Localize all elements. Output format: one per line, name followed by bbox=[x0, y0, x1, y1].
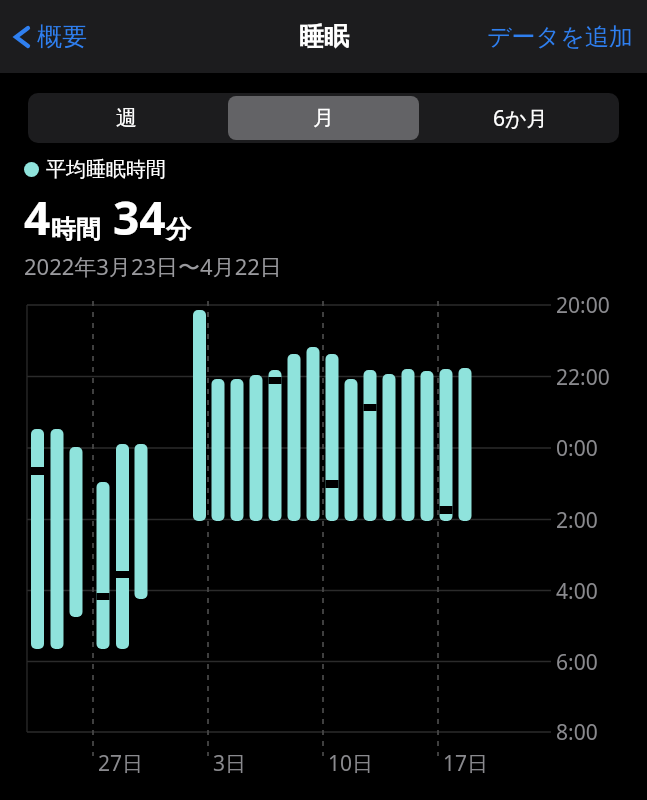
staticText: 月 bbox=[313, 105, 334, 131]
staticText: 8:00 bbox=[556, 718, 598, 747]
button[interactable]: データを追加 bbox=[473, 12, 647, 62]
staticText: 4 bbox=[24, 186, 51, 249]
staticText: 2022年3月23日〜4月22日 bbox=[24, 251, 282, 281]
staticText: データを追加 bbox=[487, 22, 633, 52]
staticText: 17日 bbox=[443, 749, 489, 778]
staticText: 時間 bbox=[51, 214, 101, 245]
staticText: 34 bbox=[113, 186, 166, 249]
staticText: 分 bbox=[166, 214, 191, 245]
staticText: 20:00 bbox=[556, 291, 610, 320]
staticText: 3日 bbox=[213, 749, 247, 778]
staticText: 6か月 bbox=[493, 104, 548, 133]
button[interactable]: 概要 bbox=[0, 13, 101, 60]
button[interactable]: 月 bbox=[228, 96, 419, 140]
button[interactable]: 週 bbox=[31, 96, 222, 140]
staticText: 27日 bbox=[98, 749, 144, 778]
staticText: 22:00 bbox=[556, 363, 610, 392]
staticText: 2:00 bbox=[556, 506, 598, 535]
staticText: 4:00 bbox=[556, 577, 598, 606]
staticText: 0:00 bbox=[556, 434, 598, 463]
staticText: 6:00 bbox=[556, 648, 598, 677]
staticText: 平均睡眠時間 bbox=[46, 157, 166, 182]
staticText: 10日 bbox=[328, 749, 374, 778]
staticText: 睡眠 bbox=[299, 21, 349, 52]
staticText: 概要 bbox=[37, 21, 87, 52]
staticText: 週 bbox=[116, 105, 137, 131]
button[interactable]: 6か月 bbox=[425, 96, 616, 140]
